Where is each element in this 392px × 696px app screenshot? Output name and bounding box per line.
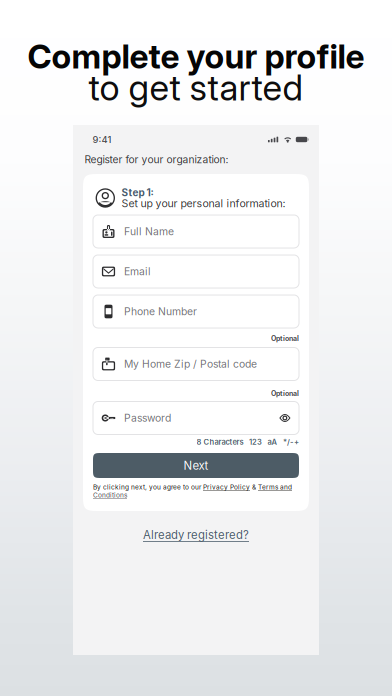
staticText: Register for your organization:: [84, 153, 228, 166]
staticText: to get started: [88, 66, 303, 109]
staticText: Optional: [271, 334, 299, 343]
button[interactable]: Already registered?: [131, 524, 261, 546]
staticText: 9:41: [92, 134, 111, 145]
staticText: Already registered?: [143, 528, 249, 542]
staticText: Complete your profile: [27, 36, 364, 76]
staticText: Full Name: [124, 225, 174, 238]
button[interactable]: Password: [93, 401, 299, 434]
staticText: aA: [267, 437, 277, 447]
button[interactable]: Email: [93, 255, 299, 288]
button[interactable]: My Home Zip / Postal code: [93, 347, 299, 380]
staticText: Conditions: [93, 491, 127, 499]
button[interactable]: Full Name: [93, 215, 299, 248]
staticText: Next: [183, 459, 208, 472]
staticText: Email: [124, 265, 151, 278]
staticText: 123: [249, 437, 262, 447]
staticText: */-+: [283, 437, 299, 447]
staticText: By clicking next, you agree to our Priva…: [93, 483, 292, 491]
button[interactable]: Next: [93, 453, 299, 478]
button[interactable]: Phone Number: [93, 295, 299, 328]
staticText: My Home Zip / Postal code: [124, 358, 257, 370]
staticText: 8 Characters: [196, 437, 243, 447]
staticText: Step 1:: [121, 186, 153, 199]
staticText: Phone Number: [124, 305, 197, 318]
staticText: Password: [124, 412, 171, 424]
staticText: Optional: [271, 389, 299, 398]
staticText: Set up your personal information:: [121, 197, 285, 210]
